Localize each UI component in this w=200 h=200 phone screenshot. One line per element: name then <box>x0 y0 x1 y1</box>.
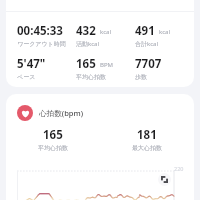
staticText: ペース <box>17 73 36 81</box>
staticText: 最大心拍数 <box>132 144 162 152</box>
staticText: BPM <box>100 61 113 69</box>
staticText: 活動kcal <box>76 40 99 48</box>
staticText: kcal <box>159 28 170 36</box>
staticText: 165 <box>43 127 63 143</box>
staticText: 00:45:33 <box>17 23 63 39</box>
button[interactable]: Expand chart <box>158 173 171 186</box>
staticText: 220 <box>174 165 184 172</box>
staticText: kcal <box>100 28 111 36</box>
staticText: 合計kcal <box>135 40 158 48</box>
staticText: 5'47" <box>17 56 46 72</box>
staticText: 平均心拍数 <box>38 144 68 152</box>
staticText: 432 <box>76 23 96 39</box>
staticText: 491 <box>135 23 155 39</box>
staticText: 心拍数(bpm) <box>39 108 84 118</box>
staticText: 歩数 <box>135 73 147 81</box>
staticText: 165 <box>76 56 96 72</box>
staticText: 181 <box>137 127 157 143</box>
staticText: 7707 <box>135 56 162 72</box>
staticText: 平均心拍数 <box>76 73 106 81</box>
staticText: ワークアウト時間 <box>17 40 66 48</box>
